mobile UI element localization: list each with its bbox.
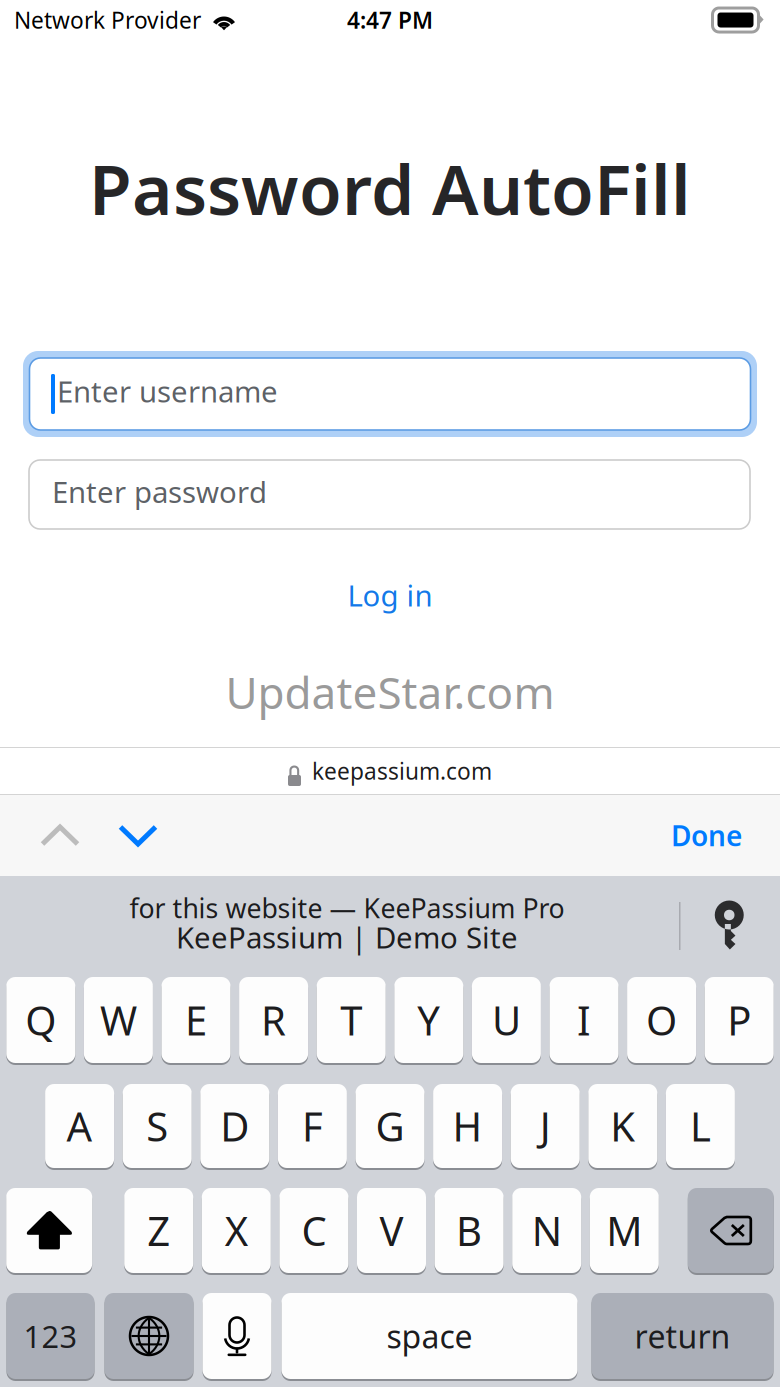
staticText: K <box>610 1099 635 1152</box>
button[interactable]: return <box>591 1292 773 1380</box>
button[interactable]: B <box>435 1187 504 1274</box>
staticText: UpdateStar.com <box>225 663 554 721</box>
button[interactable]: V <box>357 1187 426 1274</box>
staticText: Enter password <box>52 472 267 511</box>
staticText: M <box>606 1204 642 1257</box>
staticText: F <box>302 1099 323 1152</box>
staticText: U <box>492 993 521 1046</box>
button[interactable]: Done <box>657 795 756 876</box>
staticText: S <box>146 1099 168 1152</box>
staticText: Y <box>417 993 440 1046</box>
staticText: A <box>67 1099 93 1152</box>
staticText: D <box>220 1099 249 1152</box>
button[interactable]: Shift <box>6 1187 92 1274</box>
button[interactable]: 123 <box>6 1292 94 1380</box>
button[interactable]: D <box>200 1083 269 1169</box>
button[interactable]: F <box>278 1083 347 1169</box>
button[interactable]: H <box>433 1083 502 1169</box>
button[interactable]: C <box>279 1187 348 1274</box>
button[interactable]: N <box>512 1187 581 1274</box>
button[interactable]: P <box>705 976 774 1064</box>
button[interactable]: I <box>549 976 618 1064</box>
staticText: return <box>634 1315 730 1357</box>
staticText: Q <box>25 993 56 1046</box>
staticText: KeePassium | Demo Site <box>176 917 518 956</box>
staticText: T <box>340 993 362 1046</box>
staticText: H <box>453 1099 483 1152</box>
button[interactable]: G <box>355 1083 424 1169</box>
button[interactable]: K <box>588 1083 657 1169</box>
button[interactable]: Y <box>394 976 463 1064</box>
staticText: 123 <box>23 1316 77 1356</box>
button[interactable]: L <box>666 1083 735 1169</box>
button[interactable]: Next keyboard <box>104 1292 193 1380</box>
button[interactable]: X <box>202 1187 271 1274</box>
staticText: I <box>577 993 591 1046</box>
staticText: X <box>225 1204 248 1257</box>
staticText: C <box>301 1204 326 1257</box>
button[interactable]: Previous field <box>21 795 99 876</box>
staticText: G <box>375 1099 404 1152</box>
button[interactable]: Z <box>124 1187 193 1274</box>
staticText: L <box>690 1099 711 1152</box>
staticText: W <box>100 993 137 1046</box>
staticText: space <box>386 1315 472 1357</box>
staticText: Password AutoFill <box>89 142 691 234</box>
button[interactable]: space <box>281 1292 577 1380</box>
button[interactable]: S <box>123 1083 192 1169</box>
button[interactable]: Q <box>6 976 75 1064</box>
staticText: for this website — KeePassium Pro <box>129 890 564 926</box>
staticText: 4:47 PM <box>347 5 433 35</box>
button[interactable]: Passwords <box>680 876 780 976</box>
staticText: N <box>532 1204 562 1257</box>
staticText: keepassium.com <box>312 756 492 786</box>
button[interactable]: O <box>627 976 696 1064</box>
staticText: O <box>646 993 677 1046</box>
staticText: Z <box>147 1204 170 1257</box>
staticText: Enter username <box>57 371 278 410</box>
staticText: R <box>261 993 286 1046</box>
staticText: P <box>727 993 751 1046</box>
button[interactable]: T <box>317 976 386 1064</box>
button[interactable]: U <box>472 976 541 1064</box>
button[interactable]: Delete <box>688 1187 774 1274</box>
button[interactable]: J <box>511 1083 580 1169</box>
button[interactable]: Dictation <box>202 1292 271 1380</box>
staticText: Done <box>671 817 742 854</box>
button[interactable]: Next field <box>99 795 177 876</box>
staticText: E <box>185 993 207 1046</box>
staticText: J <box>540 1099 551 1152</box>
staticText: Network Provider <box>14 5 201 35</box>
staticText: V <box>379 1204 403 1257</box>
button[interactable]: M <box>590 1187 659 1274</box>
button[interactable]: E <box>161 976 230 1064</box>
button[interactable]: A <box>45 1083 114 1169</box>
button[interactable]: Log in <box>347 579 432 611</box>
button[interactable]: W <box>84 976 153 1064</box>
button[interactable]: for this website — KeePassium Pro <box>0 876 694 976</box>
staticText: Log in <box>347 575 432 614</box>
staticText: B <box>456 1204 482 1257</box>
button[interactable]: R <box>239 976 308 1064</box>
